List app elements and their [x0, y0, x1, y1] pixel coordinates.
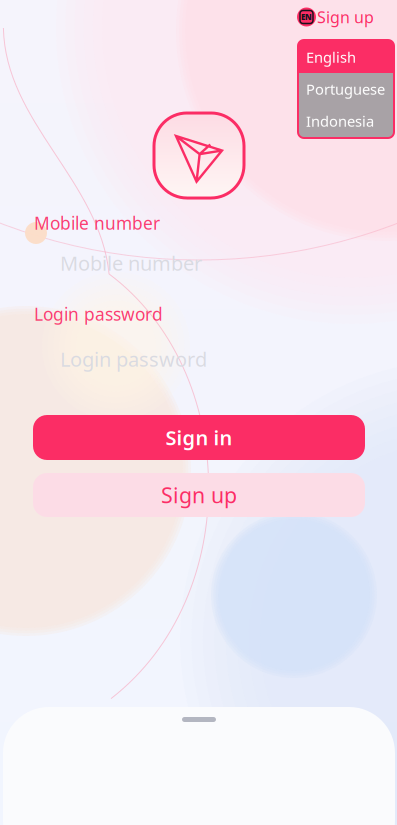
staticText: EN — [301, 12, 312, 22]
staticText: Indonesia — [306, 111, 374, 131]
staticText: Sign up — [161, 481, 237, 509]
staticText: Mobile number — [34, 211, 160, 234]
staticText: Login password — [34, 302, 163, 325]
button[interactable]: Indonesia — [299, 105, 393, 137]
button[interactable]: Portuguese — [299, 73, 393, 105]
button[interactable]: English — [299, 41, 393, 73]
staticText: English — [306, 47, 356, 67]
staticText: Sign up — [317, 6, 374, 28]
staticText: Mobile number — [60, 250, 202, 276]
button[interactable]: Sign in — [33, 415, 365, 460]
staticText: Login password — [60, 346, 207, 372]
staticText: Portuguese — [306, 79, 385, 99]
button[interactable]: Sign up — [33, 473, 365, 517]
button[interactable]: EN — [296, 6, 376, 28]
staticText: Sign in — [165, 424, 232, 451]
